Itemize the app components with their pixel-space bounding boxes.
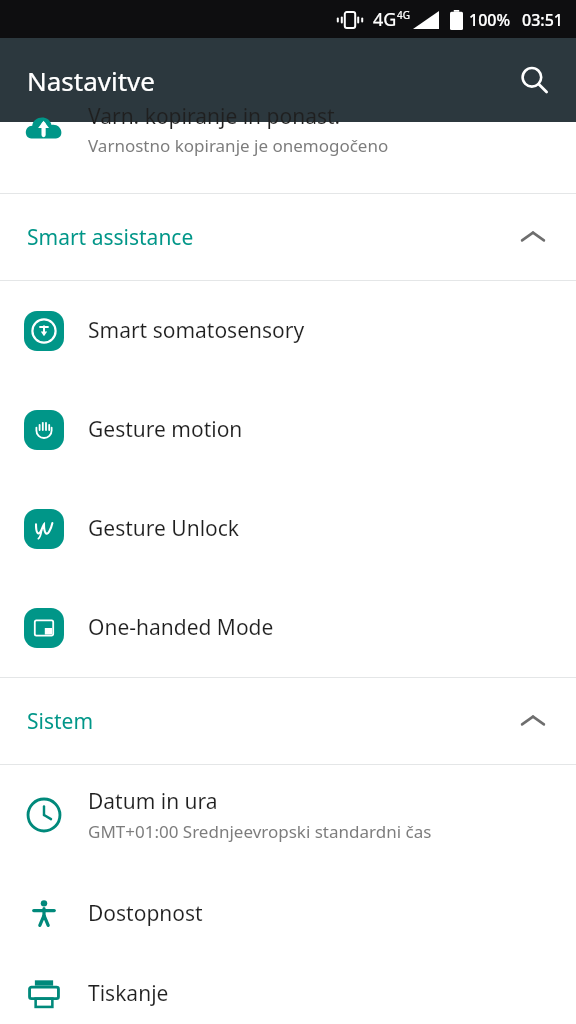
button[interactable]: Search [506,52,562,108]
staticText: 100% [469,9,511,31]
staticText: Smart somatosensory [88,316,305,345]
staticText: Nastavitve [27,63,155,98]
button[interactable]: Smart somatosensory [0,281,576,380]
staticText: Varn. kopiranje in ponast. [88,102,341,131]
staticText: 4G [397,8,410,22]
button[interactable]: Datum in ura [0,765,576,864]
staticText: 03:51 [522,9,563,31]
staticText: Sistem [27,707,520,736]
staticText: Datum in ura [88,787,218,816]
staticText: Varnostno kopiranje je onemogočeno [88,134,389,157]
staticText: Gesture Unlock [88,514,240,543]
staticText: Gesture motion [88,415,243,444]
button[interactable]: Gesture motion [0,380,576,479]
button[interactable]: Smart assistance [0,194,576,280]
staticText: Smart assistance [27,223,520,252]
button[interactable]: One-handed Mode [0,578,576,677]
button[interactable]: Varn. kopiranje in ponast. [0,122,576,193]
staticText: Tiskanje [88,979,169,1008]
button[interactable]: Dostopnost [0,864,576,963]
button[interactable]: Sistem [0,678,576,764]
staticText: 4G [373,7,397,32]
button[interactable]: Tiskanje [0,963,576,1024]
staticText: One-handed Mode [88,613,274,642]
staticText: GMT+01:00 Srednjeevropski standardni čas [88,820,432,843]
staticText: Dostopnost [88,899,203,928]
button[interactable]: Gesture Unlock [0,479,576,578]
